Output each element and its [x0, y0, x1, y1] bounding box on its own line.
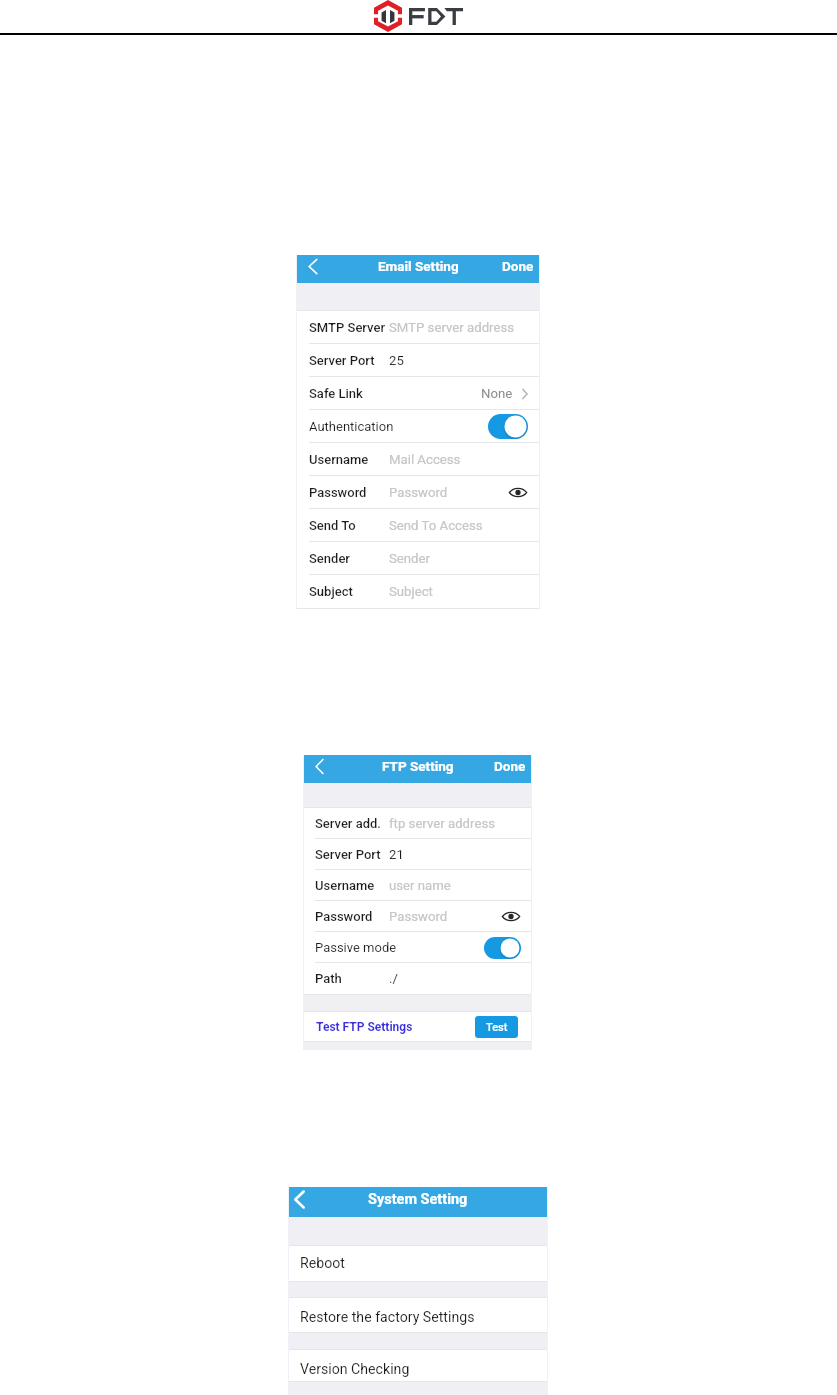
button[interactable]: Restore the factory Settings: [288, 1298, 548, 1332]
button[interactable]: Back: [296, 252, 330, 280]
button[interactable]: Version Checking: [288, 1350, 548, 1381]
staticText: Server add.: [315, 816, 381, 831]
staticText: Authentication: [309, 419, 394, 434]
staticText: Server Port: [309, 353, 375, 368]
staticText: Test: [486, 1021, 508, 1034]
button[interactable]: Show password: [509, 487, 527, 498]
button[interactable]: Safe Link: [296, 377, 540, 410]
staticText: Username: [309, 452, 369, 467]
staticText: SMTP server address: [389, 320, 515, 335]
button[interactable]: Authentication: [296, 410, 540, 443]
staticText: Sender: [309, 551, 350, 566]
staticText: Password: [315, 909, 373, 924]
staticText: Send To Access: [389, 518, 483, 533]
staticText: ./: [389, 971, 398, 986]
staticText: Passive mode: [315, 940, 397, 955]
staticText: 25: [389, 353, 404, 368]
button[interactable]: Back: [288, 1184, 311, 1214]
staticText: Version Checking: [300, 1361, 410, 1378]
staticText: Username: [315, 878, 375, 893]
button[interactable]: Toggle: [484, 937, 521, 959]
button[interactable]: Reboot: [288, 1246, 548, 1281]
button[interactable]: Password: [296, 476, 540, 509]
staticText: Test FTP Settings: [316, 1020, 413, 1034]
staticText: None: [481, 386, 513, 401]
staticText: Mail Access: [389, 452, 461, 467]
staticText: Done: [502, 258, 534, 274]
staticText: Sender: [389, 551, 431, 566]
staticText: Done: [494, 758, 526, 774]
button[interactable]: Sender: [296, 542, 540, 575]
staticText: SMTP Server: [309, 320, 385, 335]
staticText: Email Setting: [378, 258, 459, 274]
staticText: 21: [389, 847, 404, 862]
button[interactable]: Username: [303, 870, 532, 901]
staticText: Restore the factory Settings: [300, 1309, 475, 1326]
staticText: ftp server address: [389, 816, 495, 831]
button[interactable]: Password: [303, 901, 532, 932]
staticText: Reboot: [300, 1255, 345, 1272]
button[interactable]: Server Port: [303, 839, 532, 870]
staticText: Path: [315, 971, 342, 986]
button[interactable]: Done: [488, 752, 532, 780]
staticText: Subject: [309, 584, 353, 599]
staticText: Password: [309, 485, 367, 500]
staticText: user name: [389, 878, 451, 893]
button[interactable]: SMTP Server: [296, 311, 540, 344]
button[interactable]: Passive mode: [303, 932, 532, 963]
staticText: Send To: [309, 518, 356, 533]
button[interactable]: Path: [303, 963, 532, 994]
staticText: Password: [389, 485, 448, 500]
button[interactable]: Subject: [296, 575, 540, 608]
staticText: Password: [389, 909, 448, 924]
button[interactable]: Test FTP Settings: [303, 1012, 532, 1041]
button[interactable]: Show password: [502, 911, 520, 922]
button[interactable]: Username: [296, 443, 540, 476]
button[interactable]: Toggle: [488, 414, 528, 439]
staticText: Subject: [389, 584, 433, 599]
staticText: Safe Link: [309, 386, 363, 401]
staticText: FTP Setting: [382, 758, 454, 774]
button[interactable]: Server add.: [303, 808, 532, 839]
button[interactable]: Done: [496, 252, 540, 280]
staticText: Server Port: [315, 847, 381, 862]
button[interactable]: Server Port: [296, 344, 540, 377]
button[interactable]: Back: [303, 752, 336, 780]
button[interactable]: Test: [475, 1016, 518, 1038]
staticText: System Setting: [368, 1191, 468, 1208]
button[interactable]: Send To: [296, 509, 540, 542]
